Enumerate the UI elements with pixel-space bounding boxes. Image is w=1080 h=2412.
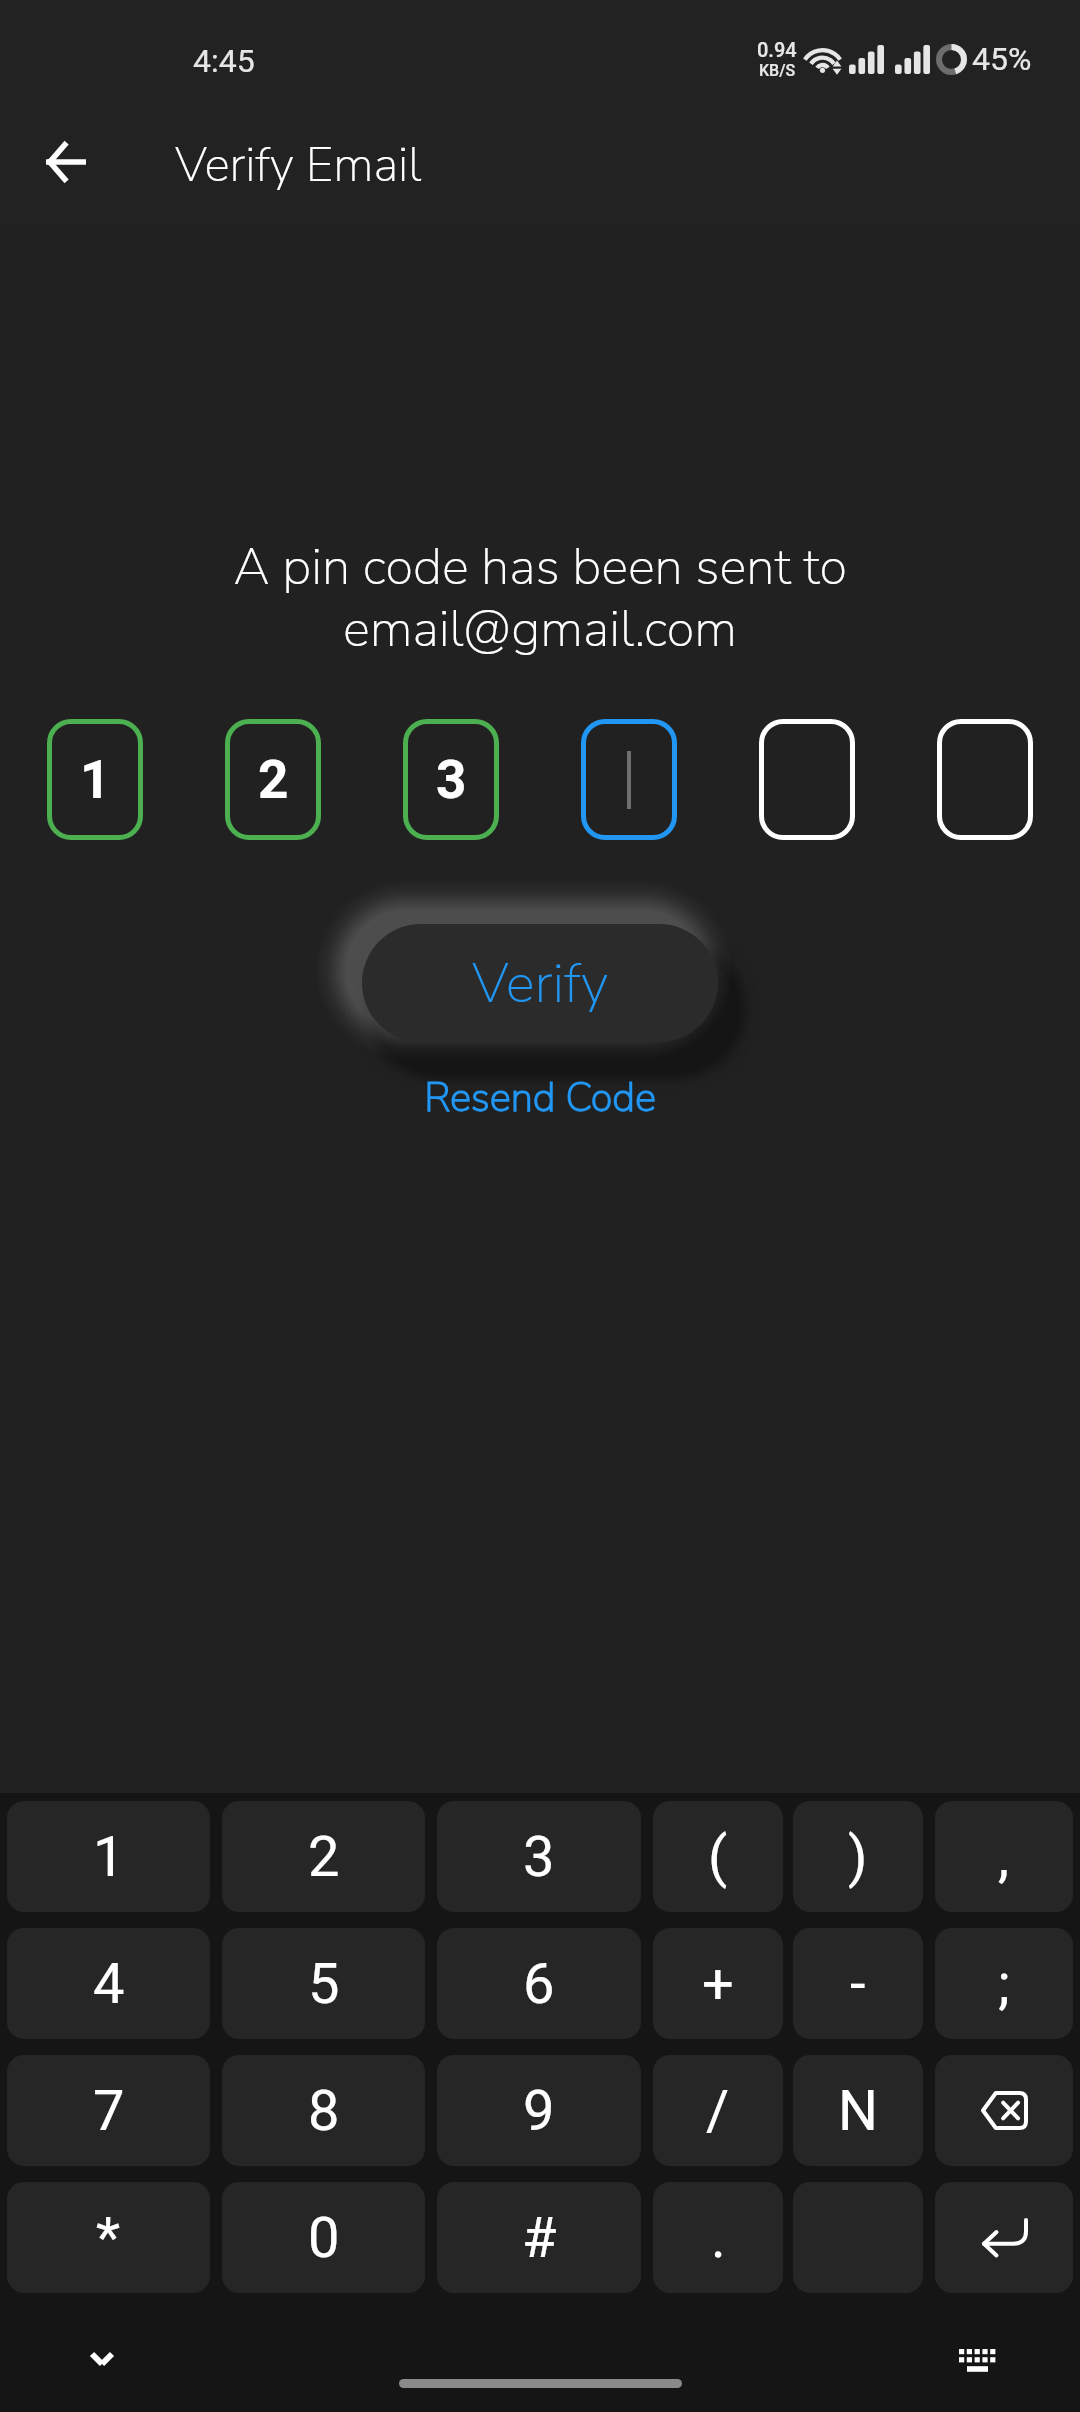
button[interactable]: 5 bbox=[222, 1928, 425, 2039]
staticText: Verify Email bbox=[175, 132, 422, 197]
button[interactable]: ) bbox=[793, 1801, 923, 1912]
staticText: . bbox=[711, 2205, 726, 2271]
button[interactable] bbox=[935, 2055, 1073, 2166]
staticText: 3 bbox=[523, 1824, 555, 1890]
button[interactable]: 9 bbox=[437, 2055, 641, 2166]
staticText: ) bbox=[848, 1824, 868, 1890]
button[interactable]: 6 bbox=[437, 1928, 641, 2039]
button[interactable] bbox=[935, 2182, 1073, 2293]
staticText: ; bbox=[998, 1951, 1010, 2017]
button[interactable]: , bbox=[935, 1801, 1073, 1912]
button[interactable] bbox=[937, 719, 1033, 840]
button[interactable]: Back bbox=[9, 95, 123, 229]
staticText: * bbox=[96, 2205, 121, 2271]
button[interactable]: ( bbox=[653, 1801, 783, 1912]
button[interactable]: 4 bbox=[7, 1928, 210, 2039]
button[interactable]: - bbox=[793, 1928, 923, 2039]
staticText: 7 bbox=[93, 2078, 125, 2144]
button[interactable]: 3 bbox=[403, 719, 499, 840]
staticText: 2 bbox=[258, 749, 289, 811]
staticText: ( bbox=[708, 1824, 728, 1890]
staticText: 9 bbox=[523, 2078, 555, 2144]
staticText: / bbox=[706, 2078, 730, 2144]
staticText: 0 bbox=[308, 2205, 340, 2271]
staticText: Verify bbox=[472, 946, 609, 1021]
button[interactable]: 3 bbox=[437, 1801, 641, 1912]
staticText: 8 bbox=[308, 2078, 340, 2144]
button[interactable]: # bbox=[437, 2182, 641, 2293]
staticText: - bbox=[850, 1951, 866, 2017]
button[interactable]: + bbox=[653, 1928, 783, 2039]
button[interactable]: 0 bbox=[222, 2182, 425, 2293]
staticText: 1 bbox=[93, 1824, 125, 1890]
staticText: N bbox=[838, 2078, 878, 2144]
button[interactable]: Verify bbox=[362, 924, 718, 1042]
button[interactable]: 2 bbox=[222, 1801, 425, 1912]
button[interactable]: 7 bbox=[7, 2055, 210, 2166]
staticText: 2 bbox=[308, 1824, 340, 1890]
button[interactable]: * bbox=[7, 2182, 210, 2293]
button[interactable]: 1 bbox=[7, 1801, 210, 1912]
staticText: + bbox=[702, 1951, 734, 2017]
button[interactable]: 2 bbox=[225, 719, 321, 840]
staticText: KB/S bbox=[759, 61, 796, 80]
staticText: 4:45 bbox=[193, 42, 255, 80]
button[interactable]: N bbox=[793, 2055, 923, 2166]
staticText: 45% bbox=[972, 40, 1032, 78]
staticText: 0.94 bbox=[757, 38, 797, 61]
button[interactable]: ; bbox=[935, 1928, 1073, 2039]
staticText: 6 bbox=[523, 1951, 555, 2017]
staticText: A pin code has been sent to email@gmail.… bbox=[0, 532, 1080, 664]
staticText: Resend Code bbox=[0, 1071, 1080, 1126]
button[interactable] bbox=[759, 719, 855, 840]
staticText: 1 bbox=[80, 749, 111, 811]
button[interactable]: Change keyboard bbox=[945, 2327, 1011, 2393]
button[interactable] bbox=[581, 719, 677, 840]
button[interactable]: . bbox=[653, 2182, 783, 2293]
button[interactable]: 8 bbox=[222, 2055, 425, 2166]
staticText: , bbox=[998, 1824, 1010, 1890]
button[interactable]: Hide keyboard bbox=[69, 2326, 135, 2392]
staticText: 5 bbox=[308, 1951, 340, 2017]
staticText: # bbox=[522, 2205, 557, 2271]
button[interactable]: / bbox=[653, 2055, 783, 2166]
button[interactable]: 1 bbox=[47, 719, 143, 840]
staticText: 3 bbox=[436, 749, 467, 811]
staticText: 4 bbox=[93, 1951, 125, 2017]
